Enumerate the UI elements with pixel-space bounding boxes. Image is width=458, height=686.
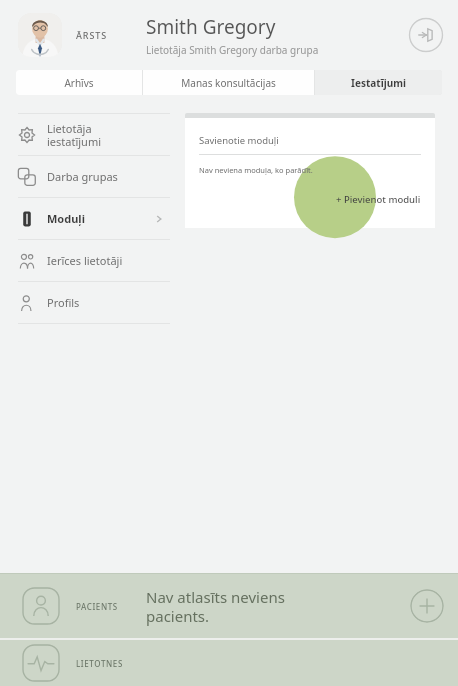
staticText: Profils xyxy=(47,295,170,310)
button[interactable]: Arhīvs xyxy=(16,70,142,95)
staticText: ĀRSTS xyxy=(76,29,108,41)
staticText: Smith Gregory xyxy=(146,14,276,40)
button[interactable]: PACIENTS xyxy=(0,574,458,638)
staticText: LIETOTNES xyxy=(76,658,123,669)
staticText: Darba grupas xyxy=(47,169,170,184)
button[interactable]: Ierīces lietotāji xyxy=(18,240,170,281)
staticText: Savienotie moduļi xyxy=(199,134,279,147)
button[interactable]: Moduļi xyxy=(18,198,170,239)
button[interactable]: Lietotāja iestatījumi xyxy=(18,114,170,155)
button[interactable]: Manas konsultācijas xyxy=(143,70,314,95)
button[interactable]: Add patient xyxy=(410,589,444,623)
staticText: Iestatījumi xyxy=(351,76,406,90)
staticText: Moduļi xyxy=(47,211,154,226)
staticText: Ierīces lietotāji xyxy=(47,253,170,268)
staticText: Lietotāja Smith Gregory darba grupa xyxy=(146,43,319,57)
staticText: + Pievienot moduli xyxy=(336,193,421,206)
staticText: Arhīvs xyxy=(64,76,94,90)
button[interactable]: Profils xyxy=(18,282,170,323)
staticText: Nav neviena moduļa, ko parādīt. xyxy=(199,165,313,175)
staticText: Nav atlasīts neviens pacients. xyxy=(146,587,410,626)
staticText: Manas konsultācijas xyxy=(181,76,276,90)
staticText: Lietotāja iestatījumi xyxy=(47,121,170,149)
staticText: PACIENTS xyxy=(76,601,118,612)
button[interactable]: Log out xyxy=(408,17,444,53)
button[interactable]: Iestatījumi xyxy=(315,70,442,95)
button[interactable]: Darba grupas xyxy=(18,156,170,197)
button[interactable]: + Pievienot moduli xyxy=(336,193,421,206)
button[interactable]: LIETOTNES xyxy=(0,640,458,686)
